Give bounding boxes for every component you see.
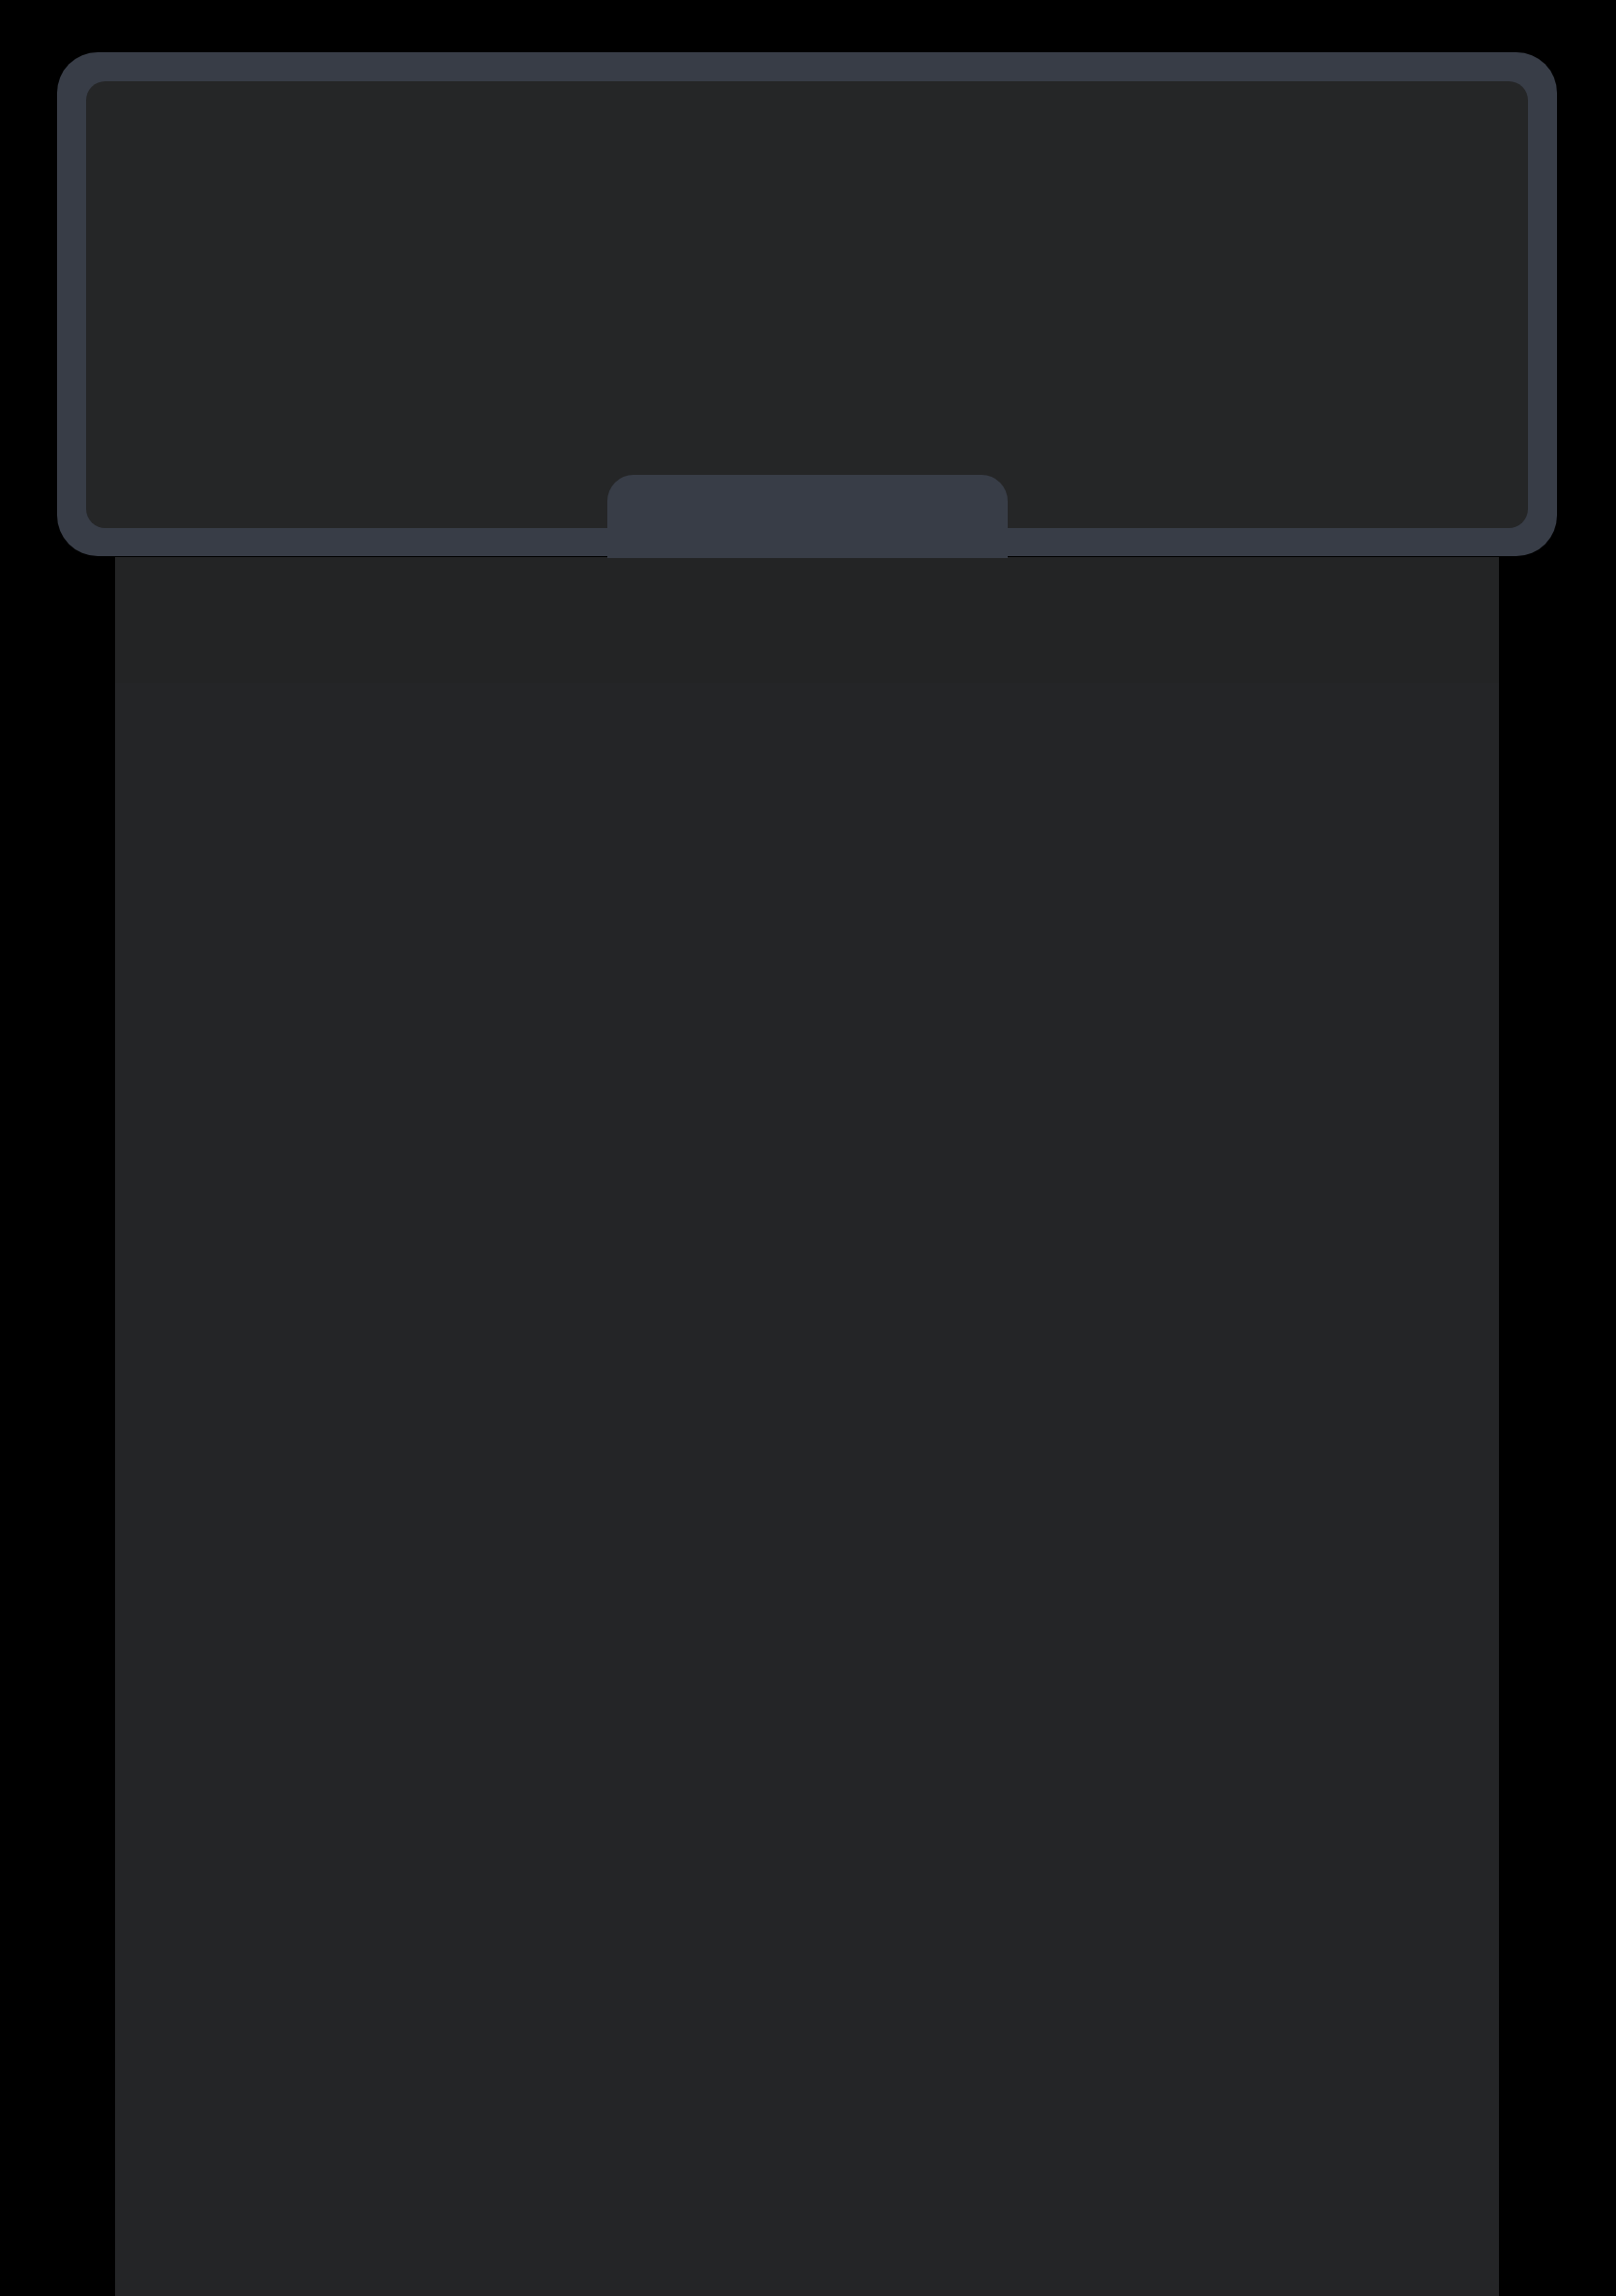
button[interactable]: Drag handle [607, 475, 1008, 558]
button[interactable]: Top panel [57, 52, 1557, 556]
